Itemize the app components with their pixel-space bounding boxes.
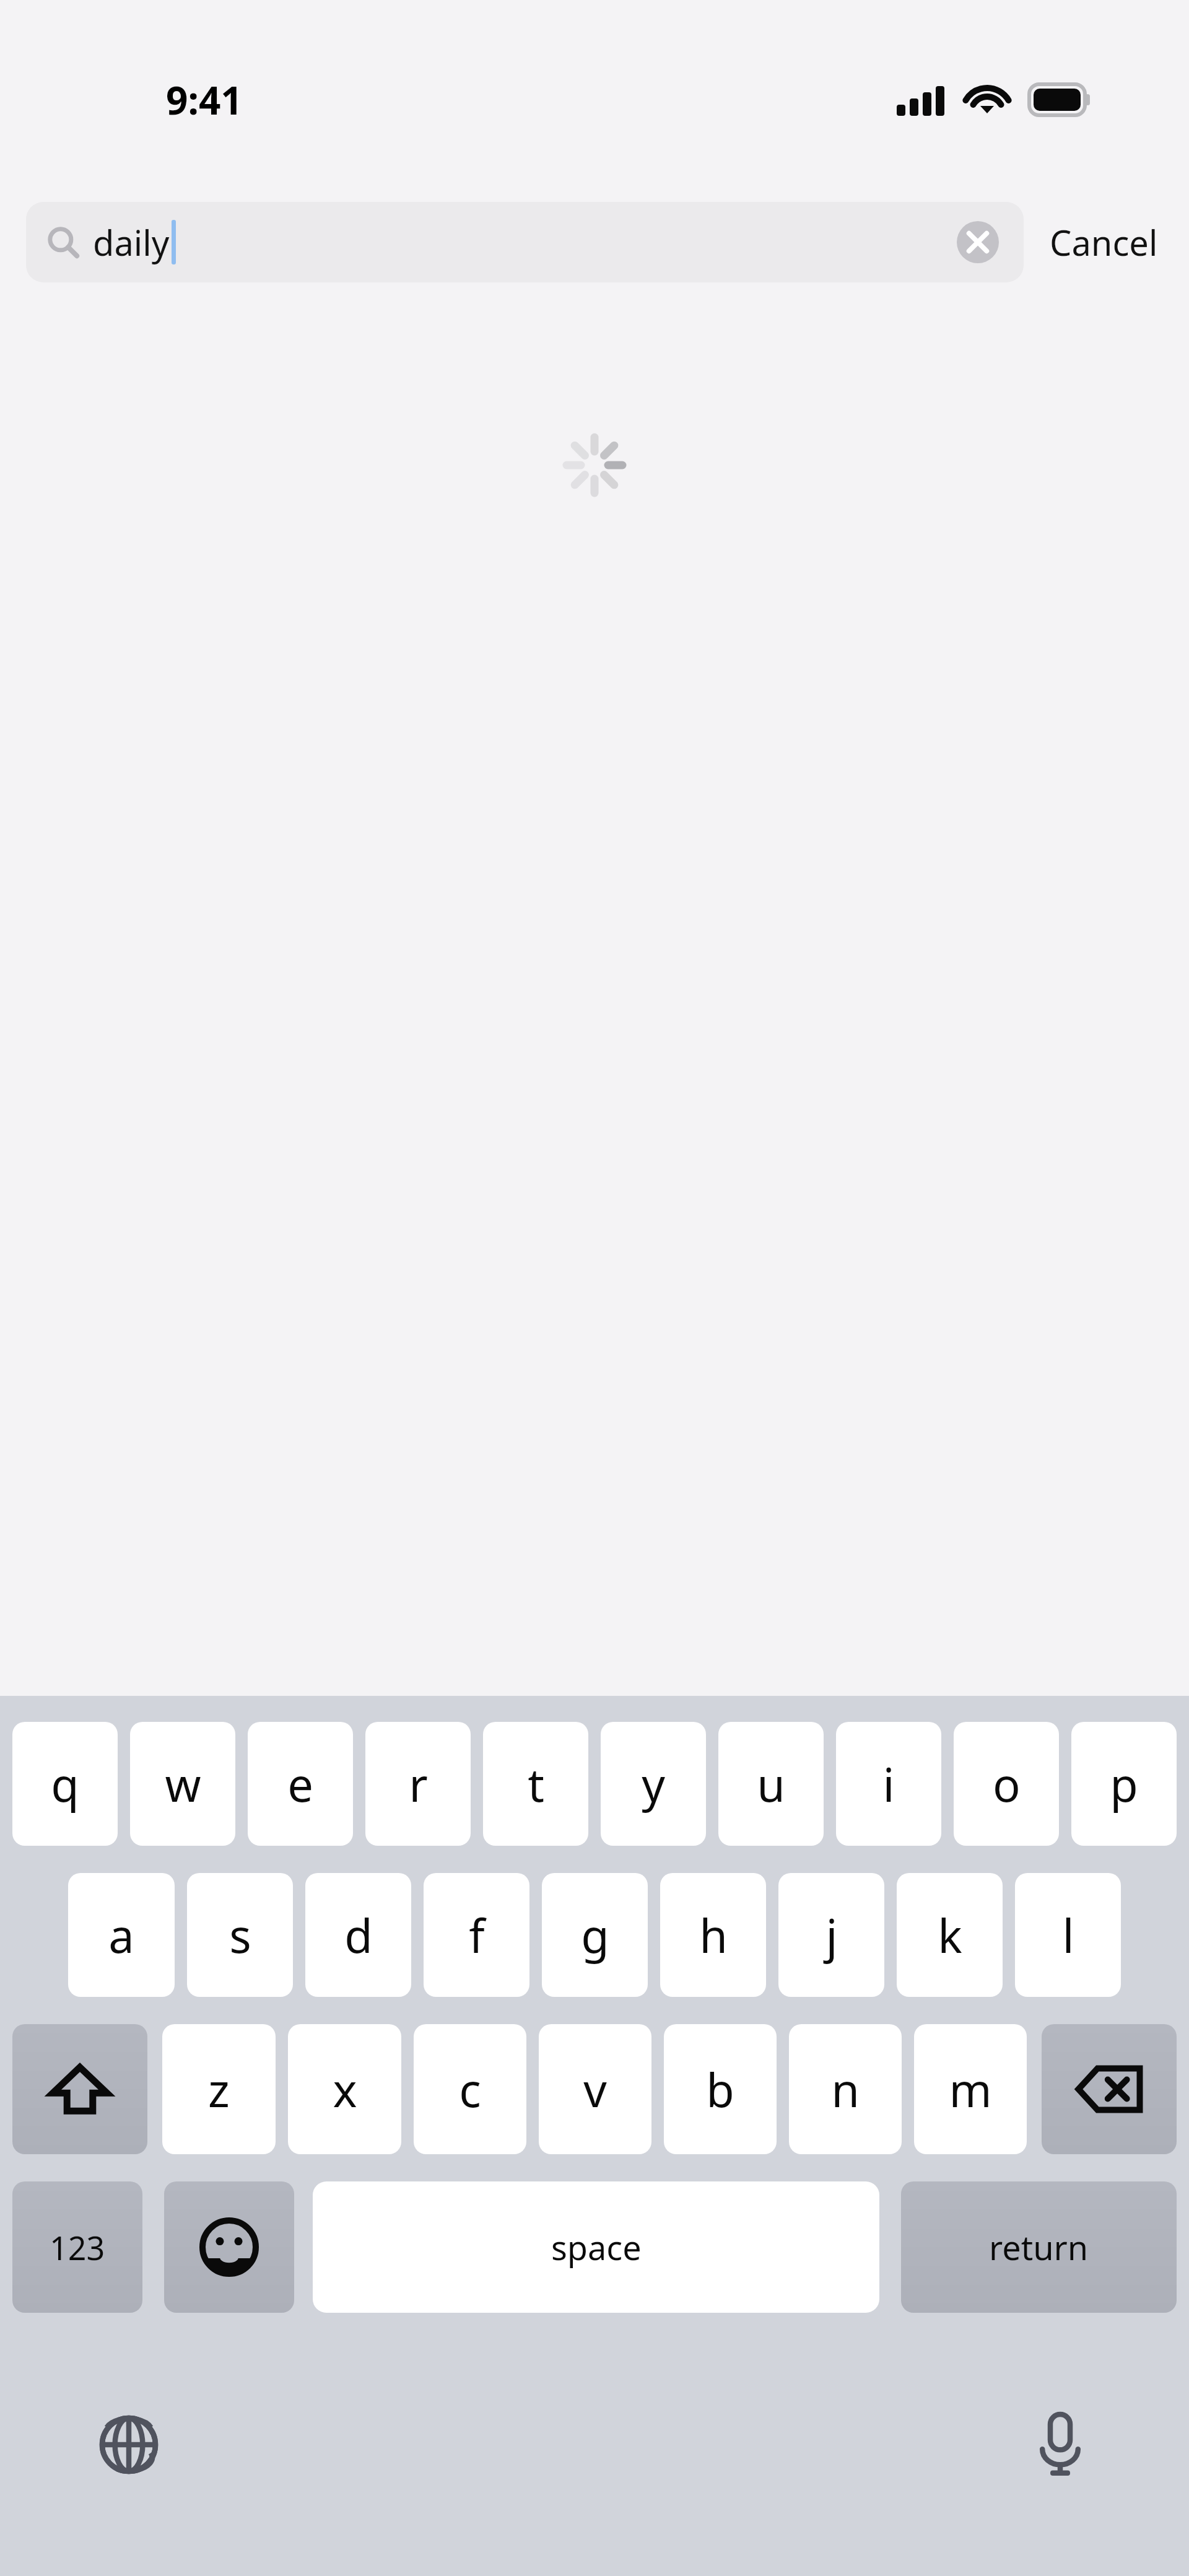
button[interactable]: x	[288, 2024, 401, 2154]
staticText: x	[333, 2058, 357, 2121]
staticText: i	[882, 1753, 895, 1815]
button[interactable]: s	[187, 1873, 293, 1997]
button[interactable]: n	[789, 2024, 902, 2154]
staticText: m	[949, 2058, 992, 2121]
button[interactable]: p	[1071, 1722, 1177, 1846]
button[interactable]: b	[664, 2024, 777, 2154]
button[interactable]: q	[12, 1722, 118, 1846]
staticText: r	[409, 1753, 428, 1815]
button[interactable]: Cancel	[1045, 209, 1163, 276]
button[interactable]: j	[778, 1873, 884, 1997]
button[interactable]: a	[68, 1873, 175, 1997]
staticText: 123	[50, 2225, 105, 2269]
button[interactable]: Clear text	[953, 217, 1003, 267]
staticText: Cancel	[1050, 219, 1158, 266]
button[interactable]: 123	[12, 2181, 142, 2313]
staticText: g	[581, 1904, 609, 1967]
staticText: c	[459, 2058, 481, 2121]
button[interactable]: d	[305, 1873, 411, 1997]
staticText: 9:41	[166, 74, 243, 126]
button[interactable]: y	[601, 1722, 706, 1846]
button[interactable]: u	[718, 1722, 824, 1846]
button[interactable]: t	[483, 1722, 588, 1846]
button[interactable]: Shift	[12, 2024, 147, 2154]
button[interactable]: Emoji	[164, 2181, 294, 2313]
button[interactable]: Backspace	[1042, 2024, 1177, 2154]
button[interactable]: m	[914, 2024, 1027, 2154]
button[interactable]: Dictate	[1004, 2389, 1116, 2500]
staticText: v	[583, 2058, 607, 2121]
button[interactable]: c	[414, 2024, 526, 2154]
staticText: k	[938, 1904, 962, 1967]
staticText: u	[757, 1753, 785, 1815]
staticText: w	[165, 1753, 201, 1815]
staticText: daily	[93, 219, 170, 266]
staticText: o	[993, 1753, 1021, 1815]
staticText: d	[344, 1904, 373, 1967]
staticText: h	[699, 1904, 728, 1967]
staticText: j	[825, 1904, 838, 1967]
staticText: a	[108, 1904, 134, 1967]
button[interactable]: z	[162, 2024, 276, 2154]
button[interactable]: o	[954, 1722, 1059, 1846]
staticText: b	[706, 2058, 734, 2121]
button[interactable]: k	[897, 1873, 1003, 1997]
staticText: s	[229, 1904, 251, 1967]
staticText: space	[551, 2224, 642, 2270]
button[interactable]: daily	[26, 202, 1024, 282]
button[interactable]: v	[539, 2024, 651, 2154]
staticText: return	[989, 2224, 1089, 2270]
staticText: q	[51, 1753, 79, 1815]
button[interactable]: h	[660, 1873, 766, 1997]
staticText: f	[469, 1904, 485, 1967]
button[interactable]: Change keyboard language	[73, 2389, 185, 2500]
staticText: p	[1110, 1753, 1138, 1815]
button[interactable]: l	[1015, 1873, 1121, 1997]
button[interactable]: w	[130, 1722, 235, 1846]
staticText: z	[208, 2058, 230, 2121]
button[interactable]: r	[365, 1722, 471, 1846]
button[interactable]: e	[248, 1722, 353, 1846]
staticText: l	[1062, 1904, 1074, 1967]
button[interactable]: g	[542, 1873, 648, 1997]
staticText: y	[642, 1753, 665, 1815]
button[interactable]: i	[836, 1722, 941, 1846]
button[interactable]: return	[901, 2181, 1177, 2313]
button[interactable]: space	[313, 2181, 879, 2313]
button[interactable]: f	[424, 1873, 529, 1997]
staticText: t	[528, 1753, 544, 1815]
staticText: n	[831, 2058, 860, 2121]
staticText: e	[287, 1753, 313, 1815]
